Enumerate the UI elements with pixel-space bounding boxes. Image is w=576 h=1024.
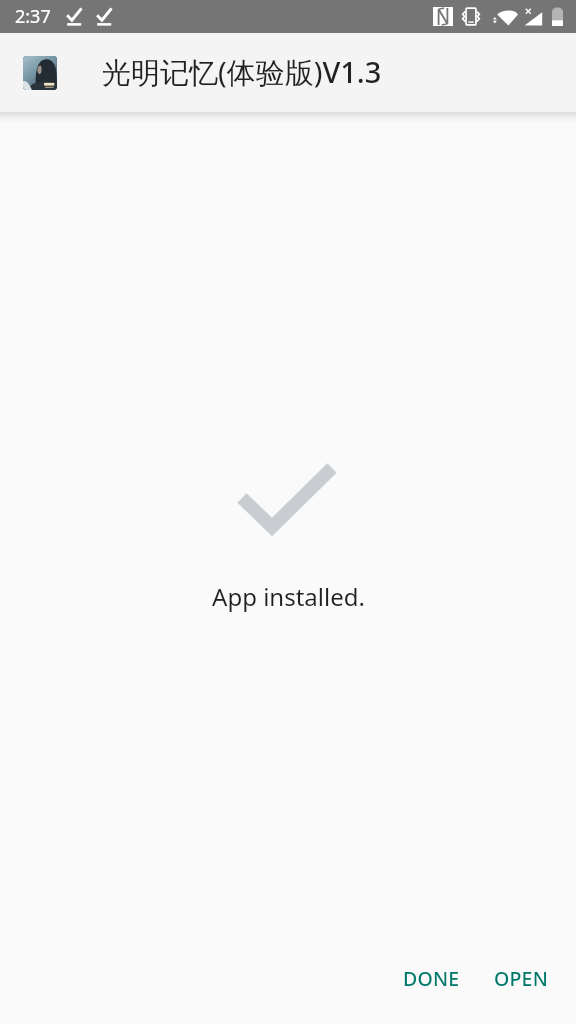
other: Download complete [96, 8, 112, 26]
staticText: DONE [403, 965, 460, 992]
other: Wi-Fi [492, 7, 518, 26]
other: Download complete [66, 8, 82, 26]
other: Mobile signal [522, 7, 543, 26]
staticText: App installed. [212, 580, 365, 613]
other: NFC [433, 7, 453, 26]
other: Installed [236, 458, 338, 544]
staticText: 2:37 [15, 4, 51, 29]
button[interactable]: OPEN [482, 954, 560, 1003]
other: App icon [23, 56, 57, 90]
other: Battery [552, 7, 563, 26]
staticText: OPEN [494, 965, 548, 992]
other: Vibrate [460, 7, 482, 26]
button[interactable]: DONE [391, 954, 472, 1003]
staticText: 光明记忆(体验版)V1.3 [102, 52, 382, 92]
